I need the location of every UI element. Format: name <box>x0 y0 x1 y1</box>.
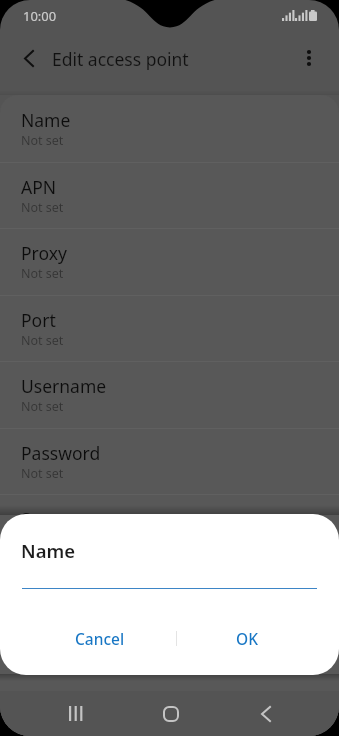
staticText: Name <box>21 108 71 132</box>
staticText: Port <box>21 308 56 332</box>
button[interactable]: Navigate up <box>7 36 51 80</box>
staticText: OK <box>236 628 258 649</box>
button[interactable]: Recent apps <box>48 691 104 736</box>
staticText: Not set <box>21 531 64 548</box>
staticText: Cancel <box>75 628 125 649</box>
button[interactable]: Username <box>0 361 339 428</box>
staticText: Not set <box>21 265 64 282</box>
staticText: Not set <box>21 398 64 415</box>
button[interactable]: Cancel <box>24 618 176 658</box>
button[interactable]: Port <box>0 295 339 362</box>
staticText: 10:00 <box>23 7 57 25</box>
staticText: Name <box>21 538 76 563</box>
button[interactable]: Proxy <box>0 228 339 295</box>
staticText: APN <box>21 175 57 199</box>
staticText: Proxy <box>21 241 67 265</box>
staticText: Username <box>21 374 107 398</box>
button[interactable]: Server <box>0 494 339 561</box>
button[interactable]: Name <box>0 95 339 162</box>
staticText: Not set <box>21 132 64 149</box>
button[interactable]: Back <box>238 691 294 736</box>
button[interactable]: Home <box>143 691 199 736</box>
button[interactable]: Password <box>0 428 339 495</box>
staticText: Not set <box>21 465 64 482</box>
button[interactable]: More options <box>287 36 331 80</box>
staticText: Not set <box>21 199 64 216</box>
button[interactable]: OK <box>177 618 317 658</box>
button[interactable]: APN <box>0 162 339 229</box>
staticText: Not set <box>21 332 64 349</box>
staticText: Edit access point <box>52 47 189 71</box>
staticText: Server <box>21 507 74 531</box>
staticText: Password <box>21 441 101 465</box>
